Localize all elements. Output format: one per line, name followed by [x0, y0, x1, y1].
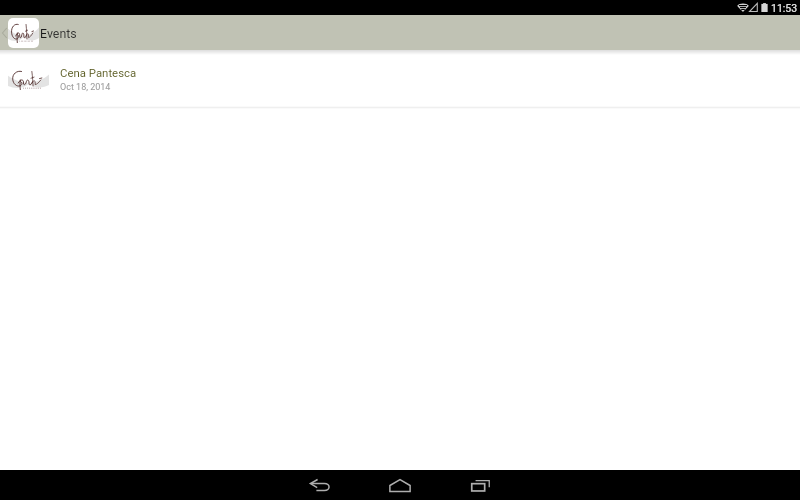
- staticText: Events: [40, 26, 77, 41]
- staticText: 11:53: [771, 2, 798, 14]
- button[interactable]: Recent apps: [440, 470, 520, 500]
- button[interactable]: Home: [360, 470, 440, 500]
- staticText: Oct 18, 2014: [60, 82, 111, 93]
- button[interactable]: Back: [280, 470, 360, 500]
- button[interactable]: Navigate up: [0, 15, 40, 50]
- staticText: Cena Pantesca: [60, 66, 137, 79]
- button[interactable]: Cena Pantesca: [0, 55, 800, 109]
